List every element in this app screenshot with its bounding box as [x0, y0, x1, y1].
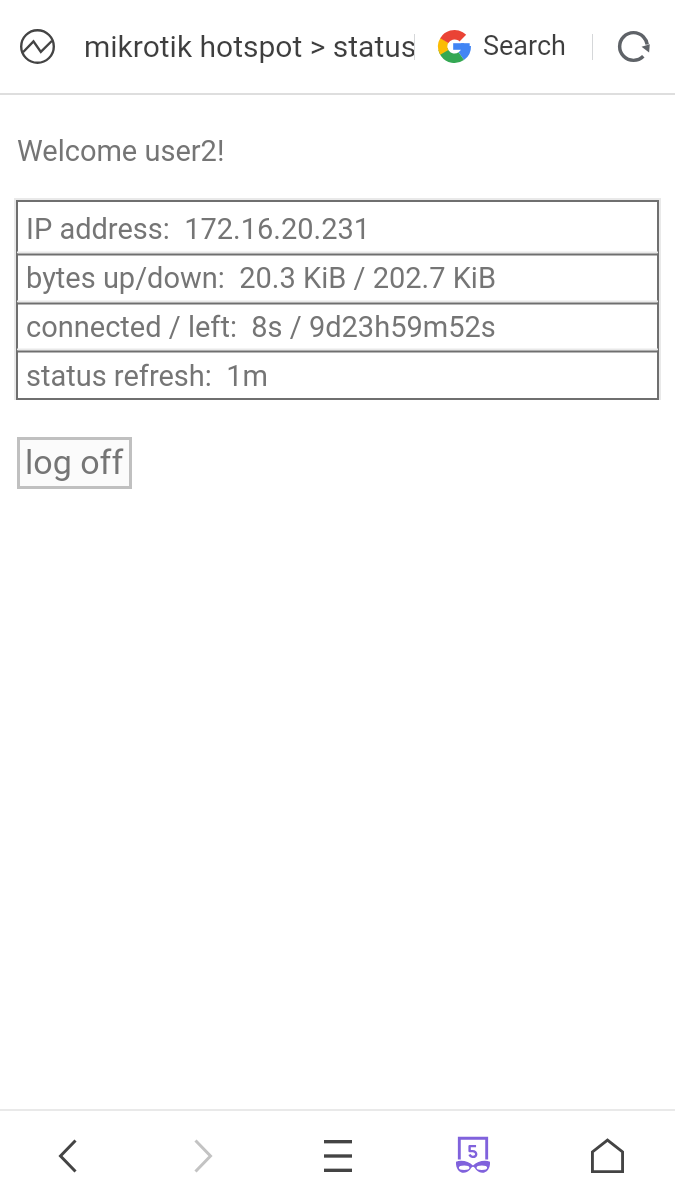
- button[interactable]: Site information: [10, 19, 64, 73]
- button[interactable]: log off: [17, 437, 132, 489]
- staticText: mikrotik hotspot > status: [84, 29, 414, 64]
- button[interactable]: Reload: [603, 16, 663, 76]
- staticText: bytes up/down: 20.3 KiB / 202.7 KiB: [26, 261, 496, 295]
- button[interactable]: mikrotik hotspot > status: [84, 0, 414, 92]
- button[interactable]: Switch tabs: [405, 1111, 540, 1200]
- staticText: log off: [25, 442, 124, 482]
- button[interactable]: Forward: [135, 1111, 270, 1200]
- staticText: Welcome user2!: [17, 134, 225, 168]
- staticText: status refresh: 1m: [26, 359, 268, 393]
- staticText: IP address: 172.16.20.231: [26, 212, 371, 246]
- button[interactable]: Home: [540, 1111, 675, 1200]
- staticText: connected / left: 8s / 9d23h59m52s: [26, 310, 496, 344]
- button[interactable]: Menu: [270, 1111, 405, 1200]
- button[interactable]: Back: [0, 1111, 135, 1200]
- button[interactable]: Search: [426, 18, 578, 74]
- staticText: Search: [483, 30, 566, 62]
